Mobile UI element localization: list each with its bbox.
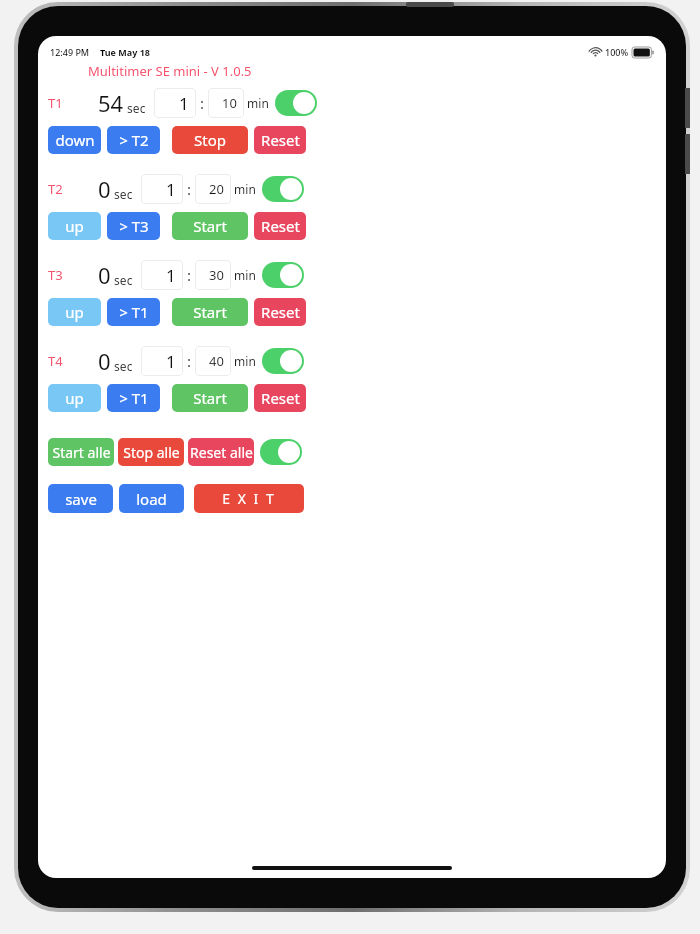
staticText: down: [55, 130, 95, 150]
button[interactable]: Start: [172, 298, 248, 326]
staticText: up: [65, 388, 84, 408]
button[interactable]: 1: [154, 88, 196, 118]
button[interactable]: > T2: [107, 126, 160, 154]
button[interactable]: 30: [195, 260, 231, 290]
staticText: 12:49 PM: [50, 46, 90, 58]
staticText: Reset: [261, 130, 300, 150]
staticText: 30: [209, 266, 224, 284]
staticText: 10: [222, 94, 237, 112]
button[interactable]: 1: [141, 260, 183, 290]
staticText: Start alle: [52, 443, 111, 462]
staticText: 0: [98, 346, 111, 376]
staticText: Tue May 18: [100, 46, 150, 58]
staticText: up: [65, 216, 84, 236]
staticText: save: [65, 489, 97, 509]
staticText: 1: [166, 350, 176, 373]
button[interactable]: Stop alle: [118, 438, 184, 466]
button[interactable]: down: [48, 126, 101, 154]
button[interactable]: 1: [141, 346, 183, 376]
button[interactable]: > T1: [107, 298, 160, 326]
button[interactable]: up: [48, 384, 101, 412]
staticText: :: [183, 179, 195, 199]
staticText: > T1: [119, 388, 149, 408]
staticText: Reset: [261, 302, 300, 322]
staticText: T2: [48, 180, 98, 198]
button[interactable]: Toggle timer: [260, 439, 302, 465]
button[interactable]: Stop: [172, 126, 248, 154]
staticText: load: [136, 489, 167, 509]
staticText: > T3: [119, 216, 149, 236]
button[interactable]: E X I T: [194, 484, 304, 513]
staticText: :: [183, 265, 195, 285]
staticText: 100%: [605, 46, 629, 58]
staticText: 1: [166, 178, 176, 201]
button[interactable]: load: [119, 484, 184, 513]
staticText: sec: [111, 358, 133, 374]
button[interactable]: Reset: [254, 126, 306, 154]
staticText: Reset: [261, 388, 300, 408]
button[interactable]: > T1: [107, 384, 160, 412]
staticText: Stop: [194, 130, 226, 150]
staticText: min: [231, 181, 256, 197]
staticText: :: [183, 351, 195, 371]
button[interactable]: up: [48, 298, 101, 326]
staticText: sec: [124, 100, 146, 116]
staticText: 1: [179, 92, 189, 115]
staticText: min: [231, 353, 256, 369]
button[interactable]: Toggle timer: [262, 176, 304, 202]
staticText: T3: [48, 266, 98, 284]
staticText: Start: [193, 302, 227, 322]
button[interactable]: Reset: [254, 298, 306, 326]
staticText: up: [65, 302, 84, 322]
staticText: min: [231, 267, 256, 283]
staticText: Stop alle: [123, 443, 180, 462]
button[interactable]: Toggle timer: [275, 90, 317, 116]
button[interactable]: Reset: [254, 384, 306, 412]
button[interactable]: up: [48, 212, 101, 240]
button[interactable]: Reset alle: [188, 438, 254, 466]
button[interactable]: Toggle timer: [262, 262, 304, 288]
staticText: E X I T: [222, 489, 276, 508]
button[interactable]: Toggle timer: [262, 348, 304, 374]
staticText: sec: [111, 186, 133, 202]
staticText: Multitimer SE mini - V 1.0.5: [88, 62, 666, 80]
staticText: > T1: [119, 302, 149, 322]
button[interactable]: 1: [141, 174, 183, 204]
button[interactable]: save: [48, 484, 113, 513]
staticText: 0: [98, 260, 111, 290]
button[interactable]: 20: [195, 174, 231, 204]
staticText: Start: [193, 388, 227, 408]
staticText: Reset: [261, 216, 300, 236]
staticText: min: [244, 95, 269, 111]
staticText: 20: [209, 180, 224, 198]
button[interactable]: Start alle: [48, 438, 114, 466]
staticText: sec: [111, 272, 133, 288]
staticText: T1: [48, 94, 98, 112]
button[interactable]: > T3: [107, 212, 160, 240]
staticText: Reset alle: [190, 443, 253, 462]
button[interactable]: 40: [195, 346, 231, 376]
staticText: :: [196, 93, 208, 113]
button[interactable]: 10: [208, 88, 244, 118]
staticText: 40: [209, 352, 224, 370]
staticText: T4: [48, 352, 98, 370]
staticText: Start: [193, 216, 227, 236]
staticText: 1: [166, 264, 176, 287]
staticText: > T2: [119, 130, 149, 150]
staticText: 0: [98, 174, 111, 204]
button[interactable]: Start: [172, 212, 248, 240]
staticText: 54: [98, 88, 124, 118]
button[interactable]: Start: [172, 384, 248, 412]
button[interactable]: Reset: [254, 212, 306, 240]
